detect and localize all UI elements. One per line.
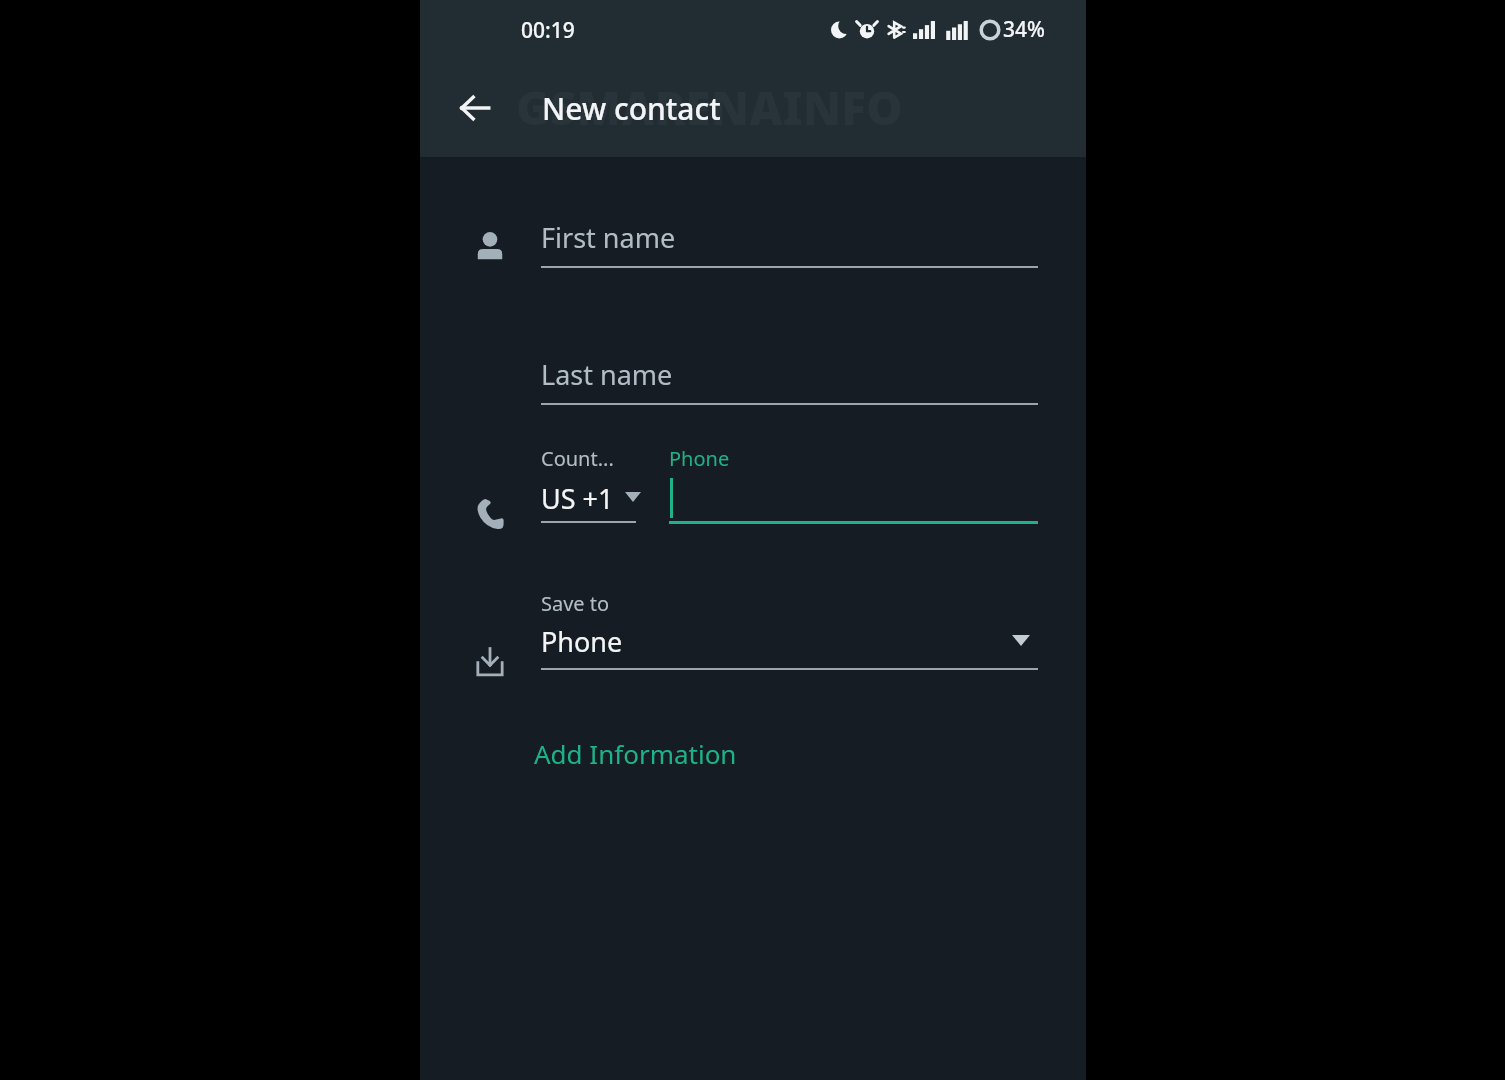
button[interactable]: Add Information [520, 727, 751, 779]
button[interactable]: Last name [541, 356, 1038, 415]
staticText: Phone [541, 623, 623, 660]
staticText: Count... [541, 445, 614, 472]
staticText: Save to [541, 590, 610, 617]
staticText: Phone [669, 445, 730, 472]
staticText: New contact [542, 88, 721, 129]
staticText: Add Information [534, 736, 737, 771]
button[interactable]: Phone [669, 445, 1038, 525]
button[interactable]: Count... [541, 445, 651, 525]
staticText: GSMARENAINFO [516, 76, 903, 139]
button[interactable]: Back [445, 78, 505, 138]
button[interactable]: First name [541, 219, 1038, 278]
button[interactable]: Save to [541, 590, 1038, 680]
staticText: First name [541, 219, 676, 256]
staticText: US +1 [541, 480, 614, 517]
staticText: 34% [1003, 15, 1045, 44]
staticText: 00:19 [521, 16, 575, 45]
staticText: Last name [541, 356, 673, 393]
